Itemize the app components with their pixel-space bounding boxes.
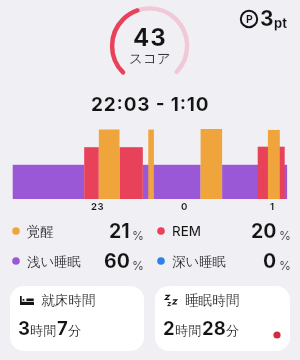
staticText: 7 [57,317,68,339]
staticText: 時間 [30,322,57,339]
button[interactable]: 就床時間 [10,286,144,351]
staticText: % [132,258,144,273]
staticText: 就床時間 [41,292,96,309]
staticText: 3 [260,6,274,31]
staticText: % [279,258,291,273]
staticText: 深い睡眠 [172,253,226,270]
staticText: 分 [68,322,82,339]
button[interactable]: 深い睡眠 [157,249,291,273]
staticText: 分 [226,322,240,339]
staticText: 時間 [175,322,202,339]
staticText: P [246,13,253,26]
button[interactable]: Points earned [240,6,287,31]
staticText: 22:03 - 1:10 [91,93,210,116]
staticText: 43 [133,23,167,52]
staticText: 60 [104,249,130,273]
button[interactable]: 浅い睡眠 [12,249,144,273]
button[interactable]: 睡眠時間 [155,286,290,351]
staticText: 23 [91,201,104,212]
staticText: 睡眠時間 [185,292,240,309]
button[interactable]: 覚醒 [12,219,144,243]
staticText: pt [274,15,287,31]
staticText: 28 [202,317,226,339]
staticText: スコア [129,50,171,67]
staticText: 20 [251,219,277,243]
staticText: 覚醒 [27,223,54,240]
staticText: % [132,228,144,243]
staticText: 1 [270,201,275,212]
staticText: 0 [181,201,188,212]
staticText: 0 [263,249,277,273]
staticText: % [279,228,291,243]
staticText: 浅い睡眠 [27,253,81,270]
staticText: 21 [109,219,130,243]
staticText: 3 [18,317,30,339]
staticText: REM [172,223,201,239]
button[interactable]: REM [157,219,291,243]
staticText: 2 [163,317,175,339]
